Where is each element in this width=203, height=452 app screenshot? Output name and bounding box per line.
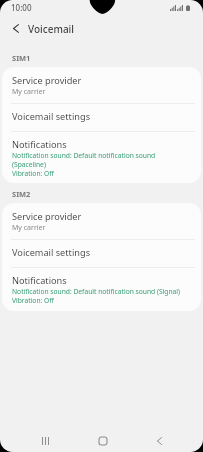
staticText: 10:00 xyxy=(11,2,32,13)
staticText: My carrier xyxy=(12,87,46,97)
staticText: Vibration: Off xyxy=(12,169,54,178)
staticText: Voicemail settings xyxy=(12,110,91,123)
button[interactable]: Voicemail settings xyxy=(2,103,201,131)
staticText: SIM2 xyxy=(12,189,31,199)
staticText: Service provider xyxy=(12,210,82,223)
button[interactable]: Navigate up xyxy=(4,17,27,40)
button[interactable]: Service provider xyxy=(2,203,201,239)
button[interactable]: Voicemail settings xyxy=(2,239,201,267)
button[interactable]: Recent apps xyxy=(17,426,74,452)
staticText: SIM1 xyxy=(12,53,31,63)
staticText: (Spaceline) xyxy=(12,160,46,169)
staticText: Notification sound: Default notification… xyxy=(12,287,181,296)
staticText: Notifications xyxy=(12,274,67,287)
staticText: Voicemail xyxy=(28,22,74,36)
button[interactable]: Back xyxy=(131,426,188,452)
staticText: My carrier xyxy=(12,223,46,233)
button[interactable]: Service provider xyxy=(2,67,201,103)
staticText: Vibration: Off xyxy=(12,296,54,305)
staticText: Voicemail settings xyxy=(12,246,91,259)
button[interactable]: Notifications xyxy=(2,267,201,311)
staticText: Service provider xyxy=(12,74,82,87)
staticText: Notification sound: Default notification… xyxy=(12,151,156,160)
staticText: Notifications xyxy=(12,138,67,151)
button[interactable]: Notifications xyxy=(2,131,201,183)
button[interactable]: Home xyxy=(74,426,131,452)
